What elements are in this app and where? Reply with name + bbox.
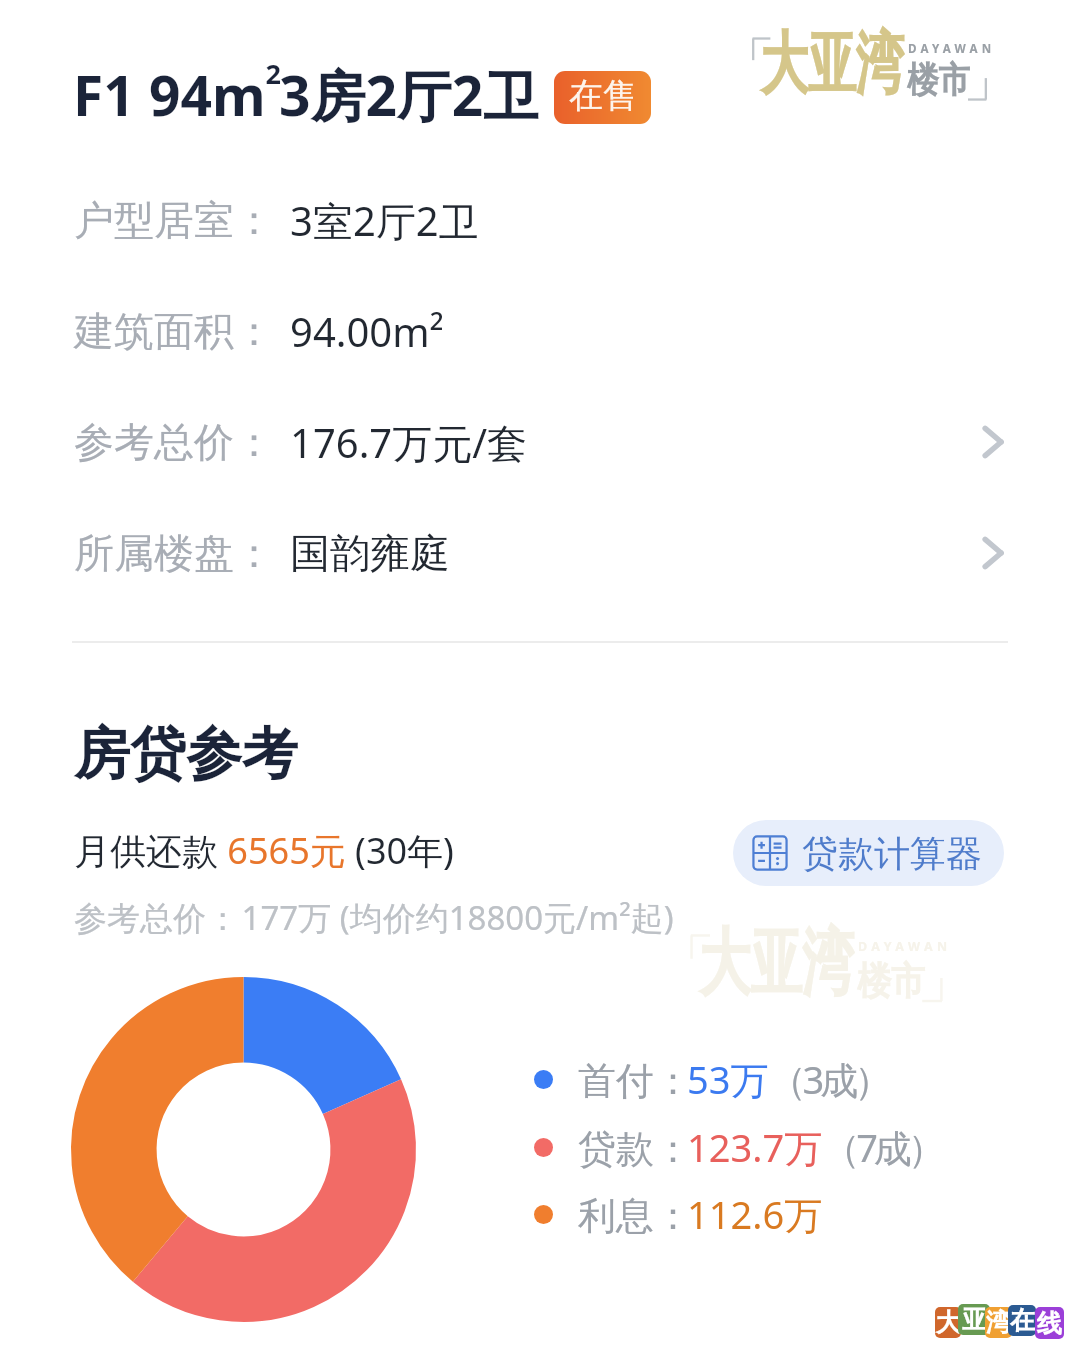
- button[interactable]: 所属楼盘：: [0, 498, 1080, 608]
- staticText: 94.00m²: [290, 304, 444, 358]
- staticText: 首付：53万（3成）: [578, 1053, 889, 1105]
- staticText: 大亚湾: [760, 22, 904, 107]
- staticText: 参考总价：: [74, 417, 270, 467]
- button[interactable]: 参考总价：: [0, 387, 1080, 497]
- staticText: 贷款计算器: [802, 831, 982, 876]
- staticText: 建筑面积：: [74, 306, 270, 356]
- staticText: 房贷参考: [74, 719, 298, 790]
- staticText: 利息：112.6万: [578, 1188, 823, 1240]
- other: Open details: [973, 534, 1011, 572]
- staticText: F1 94m23房2厅2卫: [73, 55, 539, 133]
- button[interactable]: 大亚湾在线: [935, 1304, 1065, 1340]
- staticText: DAYAWAN: [908, 41, 996, 57]
- staticText: 大: [936, 1307, 961, 1338]
- staticText: 楼市: [907, 58, 971, 103]
- staticText: 所属楼盘：: [74, 528, 270, 578]
- staticText: 亚: [962, 1304, 987, 1335]
- staticText: 楼市: [857, 957, 925, 1005]
- staticText: 湾: [986, 1307, 1011, 1338]
- staticText: 3室2厅2卫: [290, 193, 479, 248]
- other: Open details: [973, 423, 1011, 461]
- staticText: 户型居室：: [74, 195, 270, 245]
- button[interactable]: 在售: [554, 71, 651, 124]
- staticText: 176.7万元/套: [290, 415, 528, 470]
- button[interactable]: 建筑面积：: [0, 276, 1080, 386]
- staticText: 线: [1037, 1308, 1062, 1339]
- staticText: 在售: [569, 74, 637, 117]
- staticText: 大亚湾: [699, 918, 853, 1010]
- staticText: 月供还款 6565元 (30年): [74, 826, 454, 875]
- button[interactable]: 户型居室：: [0, 165, 1080, 275]
- staticText: DAYAWAN: [858, 938, 952, 955]
- staticText: 参考总价： 177万 (均价约18800元/m²起): [74, 895, 674, 940]
- other: Loan calculator: [752, 835, 788, 871]
- staticText: 国韵雍庭: [290, 528, 450, 578]
- staticText: 贷款：123.7万（7成）: [578, 1121, 942, 1173]
- staticText: 在: [1010, 1305, 1035, 1336]
- button[interactable]: Loan calculator: [733, 820, 1004, 886]
